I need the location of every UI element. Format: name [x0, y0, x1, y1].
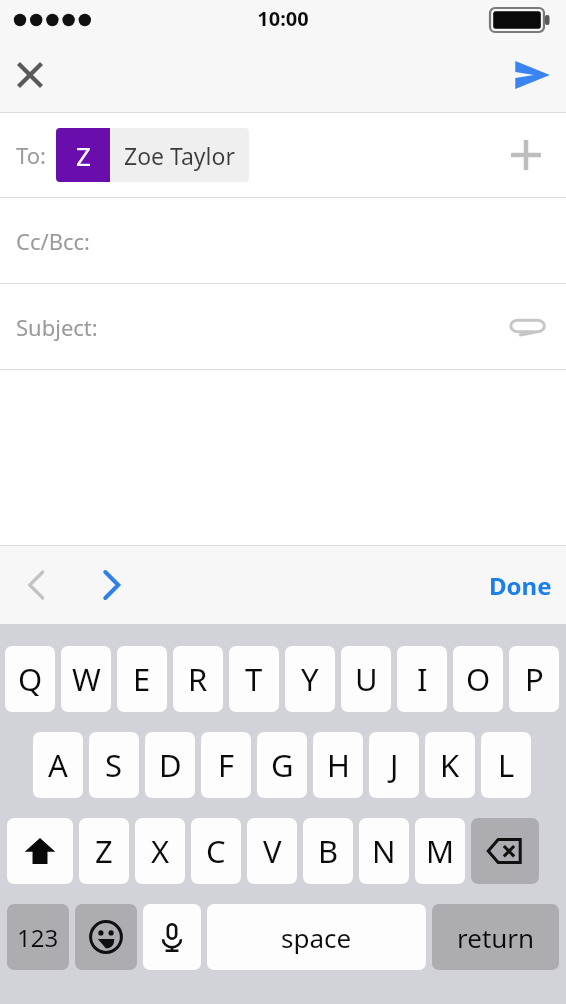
staticText: N: [372, 830, 396, 872]
button[interactable]: G: [257, 732, 307, 798]
button[interactable]: S: [89, 732, 139, 798]
button[interactable]: Next field: [84, 558, 138, 612]
staticText: K: [440, 744, 460, 786]
staticText: E: [133, 658, 151, 700]
button[interactable]: T: [229, 646, 279, 712]
button[interactable]: Send: [504, 47, 560, 103]
staticText: J: [390, 744, 399, 786]
button[interactable]: B: [303, 818, 353, 884]
staticText: I: [417, 658, 428, 700]
staticText: Z: [95, 830, 113, 872]
button[interactable]: U: [341, 646, 391, 712]
button[interactable]: L: [481, 732, 531, 798]
button[interactable]: C: [191, 818, 241, 884]
button[interactable]: Cc/Bcc:: [0, 198, 566, 283]
staticText: To:: [16, 140, 46, 170]
staticText: W: [72, 658, 101, 700]
staticText: return: [457, 920, 535, 955]
button[interactable]: Backspace: [471, 818, 539, 884]
staticText: Z: [76, 138, 91, 173]
button[interactable]: D: [145, 732, 195, 798]
button[interactable]: E: [117, 646, 167, 712]
button[interactable]: Previous field: [10, 558, 64, 612]
button[interactable]: I: [397, 646, 447, 712]
button[interactable]: K: [425, 732, 475, 798]
staticText: L: [498, 744, 515, 786]
button[interactable]: Z: [79, 818, 129, 884]
button[interactable]: 123: [7, 904, 69, 970]
staticText: T: [245, 658, 263, 700]
button[interactable]: Emoji: [75, 904, 137, 970]
button[interactable]: space: [207, 904, 426, 970]
button[interactable]: R: [173, 646, 223, 712]
button[interactable]: A: [33, 732, 83, 798]
button[interactable]: H: [313, 732, 363, 798]
staticText: S: [105, 744, 123, 786]
button[interactable]: Attach file: [502, 303, 550, 351]
button[interactable]: W: [61, 646, 111, 712]
button[interactable]: Voice input: [143, 904, 201, 970]
button[interactable]: Q: [5, 646, 55, 712]
button[interactable]: M: [415, 818, 465, 884]
staticText: M: [426, 830, 455, 872]
staticText: U: [355, 658, 378, 700]
staticText: 123: [17, 921, 59, 954]
button[interactable]: N: [359, 818, 409, 884]
button[interactable]: Y: [285, 646, 335, 712]
staticText: Done: [489, 569, 552, 602]
button[interactable]: O: [453, 646, 503, 712]
button[interactable]: Close: [4, 49, 56, 101]
staticText: Q: [18, 658, 43, 700]
button[interactable]: Z: [56, 128, 249, 182]
staticText: C: [206, 830, 226, 872]
button[interactable]: V: [247, 818, 297, 884]
staticText: O: [466, 658, 491, 700]
button[interactable]: J: [369, 732, 419, 798]
button[interactable]: To:: [0, 113, 566, 197]
staticText: V: [263, 830, 282, 872]
staticText: space: [281, 920, 352, 955]
button[interactable]: Subject:: [0, 284, 566, 369]
staticText: D: [159, 744, 182, 786]
button[interactable]: X: [135, 818, 185, 884]
staticText: B: [318, 830, 339, 872]
staticText: Y: [301, 658, 319, 700]
staticText: 10:00: [257, 5, 309, 32]
staticText: R: [188, 658, 208, 700]
staticText: A: [48, 744, 68, 786]
staticText: Cc/Bcc:: [16, 226, 90, 256]
button[interactable]: Done: [475, 546, 566, 624]
button[interactable]: P: [509, 646, 559, 712]
staticText: P: [525, 658, 544, 700]
staticText: Zoe Taylor: [124, 140, 235, 171]
button[interactable]: F: [201, 732, 251, 798]
staticText: H: [327, 744, 350, 786]
staticText: F: [218, 744, 235, 786]
staticText: Subject:: [16, 312, 98, 342]
staticText: G: [271, 744, 294, 786]
button[interactable]: Add recipient: [502, 131, 550, 179]
button[interactable]: return: [432, 904, 559, 970]
button[interactable]: Shift: [7, 818, 73, 884]
staticText: X: [151, 830, 170, 872]
